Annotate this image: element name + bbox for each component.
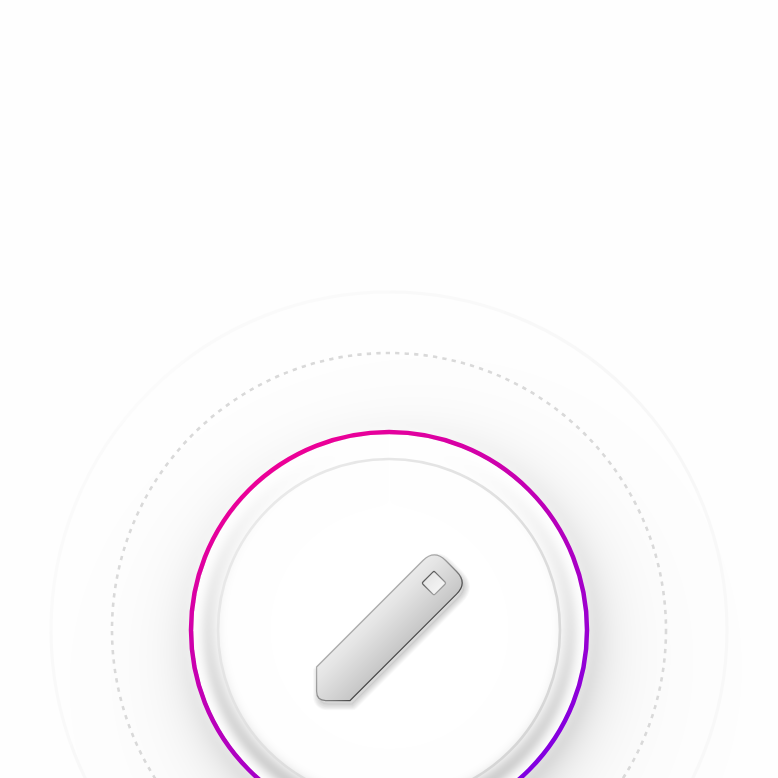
button[interactable]: Rotary dial, 45 percent: [0, 0, 778, 778]
